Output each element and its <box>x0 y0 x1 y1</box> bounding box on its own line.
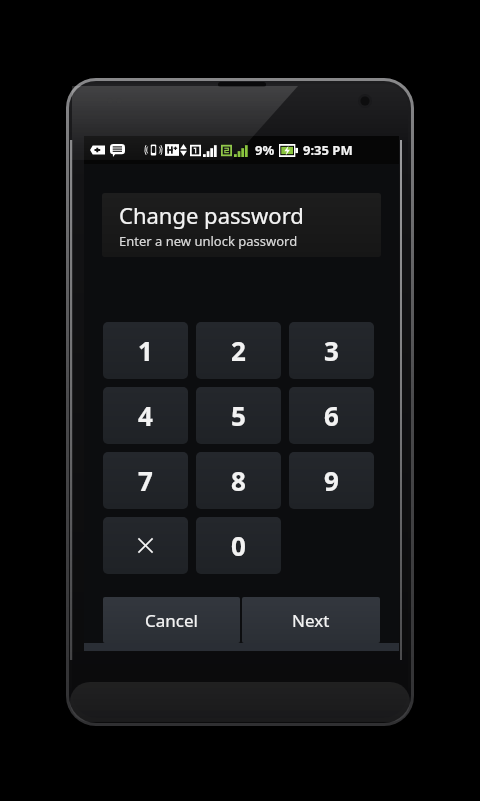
staticText: 1 <box>138 333 153 368</box>
staticText: Enter a new unlock password <box>119 232 298 250</box>
staticText: Change password <box>119 200 304 230</box>
button[interactable]: Next <box>242 597 380 643</box>
staticText: Cancel <box>145 609 198 632</box>
button[interactable]: 1 <box>103 322 188 379</box>
staticText: 9% <box>255 141 275 159</box>
button[interactable]: Delete <box>103 517 188 574</box>
button[interactable]: 9 <box>289 452 374 509</box>
staticText: 7 <box>138 463 153 498</box>
staticText: 8 <box>231 463 246 498</box>
staticText: 2 <box>231 333 246 368</box>
button[interactable]: 2 <box>196 322 281 379</box>
staticText: 4 <box>138 398 153 433</box>
button[interactable]: 6 <box>289 387 374 444</box>
staticText: 0 <box>231 528 246 563</box>
button[interactable]: 5 <box>196 387 281 444</box>
button[interactable]: 0 <box>196 517 281 574</box>
staticText: 9:35 PM <box>303 141 353 159</box>
button[interactable]: 8 <box>196 452 281 509</box>
button[interactable]: 4 <box>103 387 188 444</box>
button[interactable]: 7 <box>103 452 188 509</box>
staticText: Next <box>292 609 330 632</box>
staticText: 9 <box>324 463 339 498</box>
button[interactable]: 3 <box>289 322 374 379</box>
button[interactable]: Cancel <box>103 597 240 643</box>
staticText: 6 <box>324 398 339 433</box>
staticText: 5 <box>231 398 246 433</box>
staticText: 3 <box>324 333 339 368</box>
